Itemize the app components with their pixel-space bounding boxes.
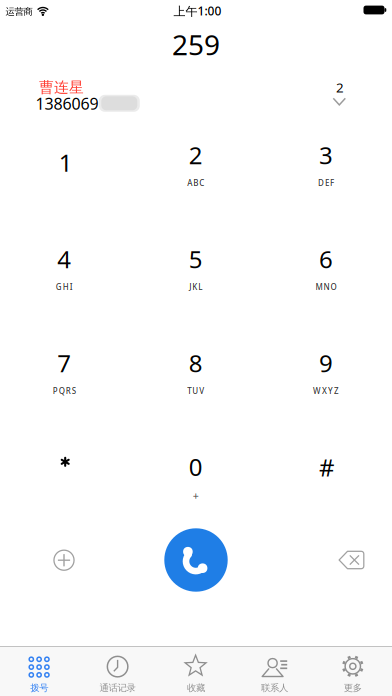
staticText: 更多 [344,682,362,694]
staticText: 拨号 [30,682,48,694]
button[interactable]: 更多 [314,646,392,696]
button[interactable]: 2 [138,123,254,215]
staticText: # [319,451,335,483]
button[interactable]: 更多匹配 [320,76,360,116]
button[interactable]: 收藏 [157,646,235,696]
staticText: 1 [59,146,73,178]
button[interactable]: # [268,435,384,527]
staticText: D E F [318,178,334,188]
staticText: P Q R S [53,386,76,396]
button[interactable]: 7 [6,331,122,423]
staticText: 3 [319,139,333,171]
button[interactable]: 4 [6,227,122,319]
button[interactable]: 曹连星 [35,73,185,117]
staticText: 5 [189,243,203,275]
staticText: 运营商 [5,6,32,17]
button[interactable]: 联系人 [235,646,314,696]
button[interactable]: 拨号 [0,646,78,696]
button[interactable]: 6 [268,227,384,319]
staticText: 通话记录 [100,682,136,694]
staticText: T U V [187,386,204,396]
staticText: G H I [56,282,73,292]
staticText: 收藏 [187,682,205,694]
button[interactable]: 3 [268,123,384,215]
button[interactable]: 删除 [317,538,373,582]
button[interactable]: * [6,435,122,527]
staticText: A B C [187,178,204,188]
staticText: 9 [319,347,333,379]
button[interactable]: 5 [138,227,254,319]
staticText: J K L [189,282,202,292]
staticText: 6 [319,243,333,275]
staticText: 0 [189,451,203,483]
staticText: 上午1:00 [173,3,221,19]
staticText: 8 [189,347,203,379]
staticText: 曹连星 [39,78,84,96]
button[interactable]: 呼叫 [163,527,229,593]
staticText: 联系人 [261,682,288,694]
button[interactable]: 添加联系人 [42,538,86,582]
staticText: 2 [189,139,203,171]
staticText: + [193,488,199,503]
button[interactable]: 0 [138,435,254,527]
button[interactable]: 8 [138,331,254,423]
button[interactable]: 通话记录 [78,646,157,696]
staticText: 259 [172,26,220,63]
staticText: 4 [57,243,71,275]
staticText: M N O [315,282,336,292]
staticText: 1386069 [35,93,98,114]
button[interactable]: 1 [6,123,122,215]
button[interactable]: 9 [268,331,384,423]
staticText: 7 [57,347,71,379]
staticText: W X Y Z [313,386,339,396]
staticText: 2 [336,78,344,96]
